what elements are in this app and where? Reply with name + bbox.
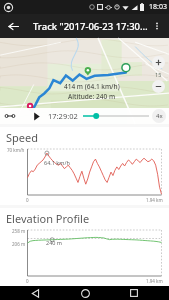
staticText: 258 m: [12, 228, 26, 234]
staticText: Elevation Profile: [6, 211, 90, 226]
button[interactable]: Elevation Profile: [0, 208, 169, 286]
button[interactable]: 4x: [152, 109, 166, 123]
button[interactable]: Home: [70, 286, 100, 300]
staticText: Altitude: 240 m: [68, 92, 116, 101]
staticText: 206 m: [12, 241, 26, 247]
button[interactable]: Back: [3, 16, 23, 36]
staticText: 1.94 km: [146, 278, 163, 284]
button[interactable]: Speed: [0, 127, 169, 205]
button[interactable]: Play: [28, 108, 44, 124]
button[interactable]: Zoom in: [152, 56, 165, 69]
button[interactable]: Back: [20, 286, 50, 300]
staticText: 17:29:02: [48, 111, 78, 121]
staticText: 15: [155, 71, 162, 78]
staticText: 4x: [156, 112, 163, 120]
staticText: 18:03: [149, 2, 167, 12]
button[interactable]: Recents: [119, 286, 149, 300]
button[interactable]: Track extent: [2, 108, 18, 124]
staticText: 0: [26, 278, 29, 284]
staticText: 70 km/h: [7, 147, 25, 153]
staticText: Speed: [6, 130, 38, 145]
button[interactable]: More options: [147, 16, 167, 36]
staticText: 240 m: [46, 239, 63, 246]
staticText: 1.94 km: [146, 197, 163, 203]
button[interactable]: Zoom out: [152, 80, 165, 93]
staticText: Track "2017-06-23 17:30:…: [33, 20, 149, 33]
staticText: 0: [26, 197, 29, 203]
button[interactable]: [83, 108, 149, 124]
staticText: 64.1 km/h: [44, 159, 70, 166]
staticText: 414 m (64.1 km/h): [64, 82, 120, 91]
